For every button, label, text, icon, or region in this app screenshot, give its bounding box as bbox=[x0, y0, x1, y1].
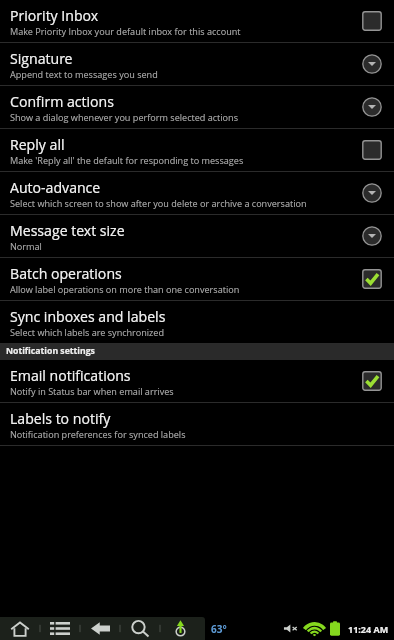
button[interactable]: Checked checkbox bbox=[362, 371, 382, 391]
staticText: Append text to messages you send bbox=[10, 68, 158, 80]
button[interactable]: Email notifications bbox=[0, 360, 394, 403]
staticText: Signature bbox=[10, 49, 73, 68]
staticText: Normal bbox=[10, 240, 42, 252]
button[interactable]: Recent apps bbox=[40, 617, 80, 640]
staticText: Show a dialog whenever you perform selec… bbox=[10, 111, 239, 123]
staticText: 11:24 AM bbox=[348, 623, 389, 635]
staticText: Notify in Status bar when email arrives bbox=[10, 385, 174, 397]
button[interactable]: Priority Inbox bbox=[0, 0, 394, 43]
button[interactable]: Battery bbox=[328, 617, 342, 640]
button[interactable]: Batch operations bbox=[0, 258, 394, 301]
button[interactable]: Search bbox=[120, 617, 160, 640]
staticText: Reply all bbox=[10, 135, 65, 154]
button[interactable]: Message text size bbox=[0, 215, 394, 258]
button[interactable]: Reply all bbox=[0, 129, 394, 172]
staticText: Labels to notify bbox=[10, 409, 111, 428]
button[interactable]: Checkbox bbox=[362, 140, 382, 160]
button[interactable]: Sync inboxes and labels bbox=[0, 301, 394, 344]
staticText: Make Priority Inbox your default inbox f… bbox=[10, 25, 241, 37]
button[interactable]: Upload bbox=[160, 617, 200, 640]
button[interactable]: Checked checkbox bbox=[362, 269, 382, 289]
staticText: Select which labels are synchronized bbox=[10, 326, 164, 338]
staticText: Allow label operations on more than one … bbox=[10, 283, 240, 295]
staticText: Message text size bbox=[10, 221, 125, 240]
button[interactable]: Muted bbox=[282, 617, 299, 640]
staticText: Priority Inbox bbox=[10, 6, 99, 25]
button[interactable]: Home bbox=[0, 617, 40, 640]
staticText: Make 'Reply all' the default for respond… bbox=[10, 154, 244, 166]
button[interactable]: Checkbox bbox=[362, 11, 382, 31]
button[interactable]: Back bbox=[80, 617, 120, 640]
staticText: Notification settings bbox=[6, 345, 95, 357]
staticText: Confirm actions bbox=[10, 92, 114, 111]
staticText: Email notifications bbox=[10, 366, 131, 385]
button[interactable]: Confirm actions bbox=[0, 86, 394, 129]
staticText: Sync inboxes and labels bbox=[10, 307, 166, 326]
button[interactable]: Wi-Fi bbox=[304, 617, 325, 640]
button[interactable]: Labels to notify bbox=[0, 403, 394, 446]
staticText: Select which screen to show after you de… bbox=[10, 197, 307, 209]
button[interactable]: Auto-advance bbox=[0, 172, 394, 215]
staticText: Notification preferences for synced labe… bbox=[10, 428, 186, 440]
staticText: 63° bbox=[211, 622, 227, 636]
button[interactable]: Open list bbox=[362, 183, 382, 203]
button[interactable]: Open list bbox=[362, 226, 382, 246]
button[interactable]: Signature bbox=[0, 43, 394, 86]
button[interactable]: Open list bbox=[362, 54, 382, 74]
staticText: Auto-advance bbox=[10, 178, 101, 197]
staticText: Batch operations bbox=[10, 264, 122, 283]
button[interactable]: Open list bbox=[362, 97, 382, 117]
